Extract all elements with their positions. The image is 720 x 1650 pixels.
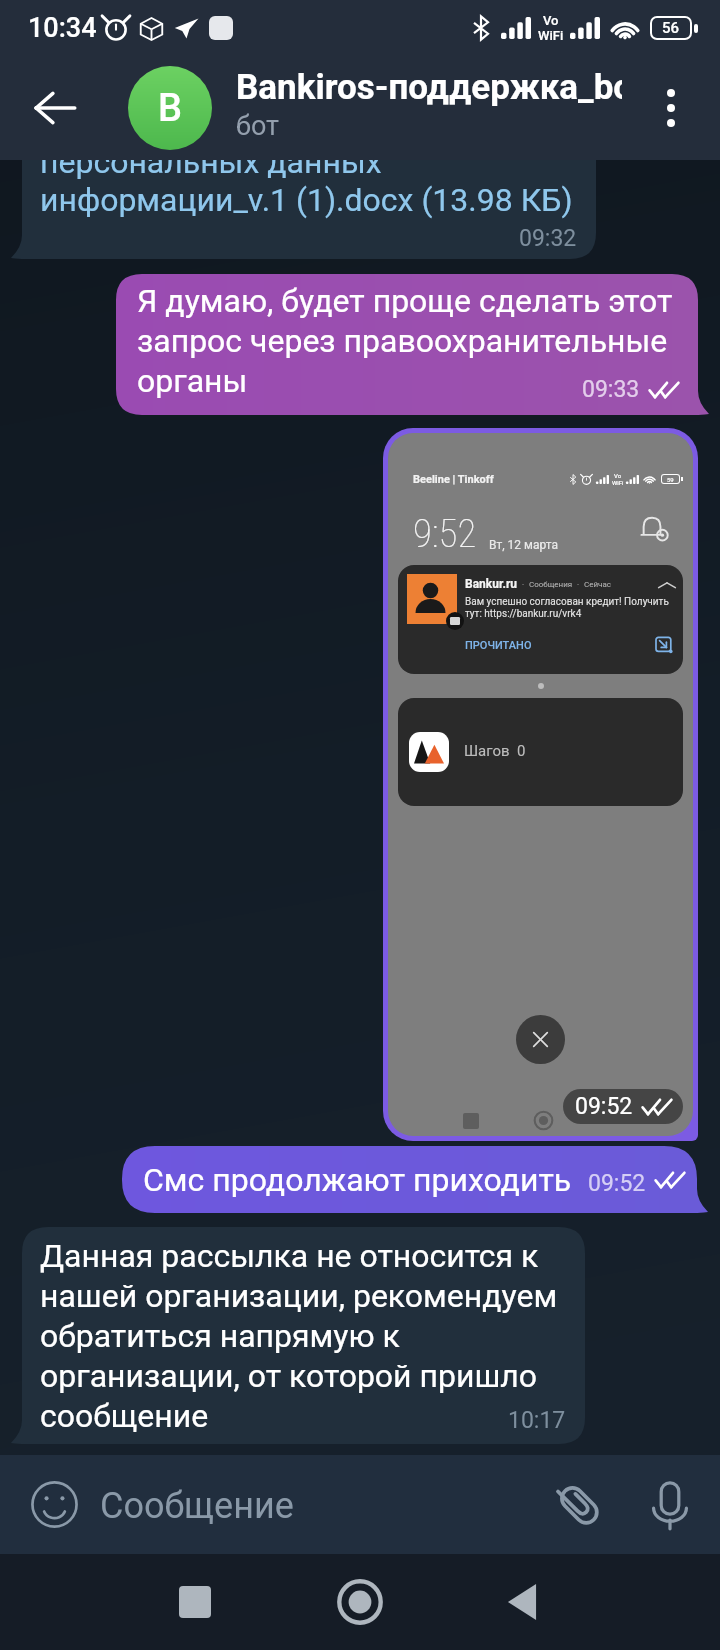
staticText: Вам успешно согласован кредит! Получить xyxy=(465,596,669,608)
staticText: 10:34 xyxy=(28,12,97,44)
staticText: 09:52 xyxy=(588,1170,646,1197)
staticText: 09:32 xyxy=(519,225,577,252)
staticText: 09:52 xyxy=(575,1093,633,1120)
staticText: 56 xyxy=(662,19,680,37)
button[interactable]: Bankur.ru xyxy=(398,565,683,674)
staticText: Сейчас xyxy=(584,580,611,589)
staticText: ПРОЧИТАНО xyxy=(465,639,532,652)
button[interactable]: Record voice message xyxy=(620,1455,719,1554)
staticText: · xyxy=(518,580,529,589)
button[interactable]: Photo xyxy=(388,433,693,1136)
staticText: тут: https://bankur.ru/vrk4 xyxy=(465,608,582,620)
staticText: бот xyxy=(236,110,280,142)
staticText: 10:17 xyxy=(508,1407,566,1434)
staticText: Сообщение xyxy=(100,1485,294,1527)
staticText: WiFi xyxy=(538,28,564,43)
button[interactable]: Шагов 0 xyxy=(398,698,683,806)
button[interactable]: More options xyxy=(636,73,706,143)
staticText: Шагов 0 xyxy=(464,742,526,760)
staticText: Смс продолжают приходить xyxy=(143,1161,572,1199)
staticText: 9:52 xyxy=(413,511,477,557)
button[interactable]: Back xyxy=(477,1557,567,1647)
staticText: Я думаю, будет проще сделать этот запрос… xyxy=(137,282,677,399)
staticText: информации_v.1 (1).docx (13.98 КБ) xyxy=(40,181,573,219)
staticText: 09:33 xyxy=(582,376,640,403)
staticText: 59 xyxy=(667,476,674,483)
staticText: Vo xyxy=(543,13,559,28)
staticText: Сообщения xyxy=(529,580,573,589)
staticText: B xyxy=(158,86,182,131)
staticText: WiFi xyxy=(612,479,624,486)
button[interactable]: Attach file xyxy=(529,1455,628,1554)
button[interactable]: Emoji xyxy=(5,1455,104,1554)
staticText: Данная рассылка не относится к нашей орг… xyxy=(40,1237,574,1434)
staticText: Bankiros-поддержка_bo xyxy=(236,67,622,108)
button[interactable]: Recent apps xyxy=(150,1557,240,1647)
button[interactable]: Back xyxy=(20,73,90,143)
button[interactable]: Profile photo xyxy=(128,66,212,150)
staticText: · xyxy=(573,580,584,589)
staticText: Bankur.ru xyxy=(465,577,518,591)
button[interactable]: Смс продолжают приходить xyxy=(122,1146,708,1213)
staticText: Вт, 12 марта xyxy=(489,538,558,552)
staticText: Beeline | Tinkoff xyxy=(413,473,494,486)
staticText: Vo xyxy=(614,472,622,479)
button[interactable]: Home xyxy=(315,1557,405,1647)
button[interactable]: Close xyxy=(516,1015,565,1064)
staticText: персональных данных xyxy=(40,143,382,181)
